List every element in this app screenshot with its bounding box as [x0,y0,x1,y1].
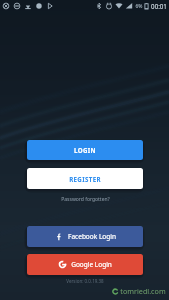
button[interactable]: Facebook Login [27,226,143,247]
staticText: tomriedl.com [120,286,166,296]
staticText: Password forgotten? [61,196,110,203]
staticText: LOGIN [74,146,96,154]
button[interactable]: Password forgotten? [27,192,143,206]
button[interactable]: LOGIN [27,140,143,160]
staticText: 00:01 [151,2,167,10]
staticText: Google Login [71,260,112,269]
staticText: 6% [135,3,143,10]
button[interactable]: REGISTER [27,168,143,189]
staticText: Facebook Login [68,232,116,241]
staticText: Version: 0.0.19.38 [66,278,104,284]
staticText: REGISTER [69,175,101,183]
button[interactable]: Google Login [27,254,143,275]
